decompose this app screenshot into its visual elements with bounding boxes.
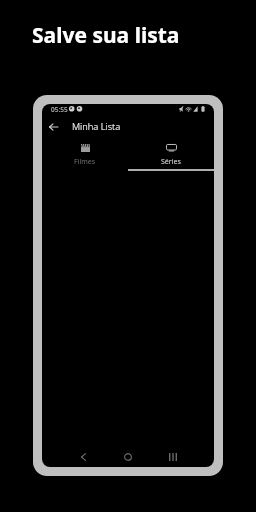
staticText: Salve sua lista xyxy=(32,21,180,50)
staticText: Minha Lista xyxy=(72,120,121,133)
button[interactable]: Séries xyxy=(128,138,214,170)
button[interactable]: Recentes xyxy=(150,445,195,467)
button[interactable]: Início xyxy=(105,445,150,467)
staticText: Filmes xyxy=(74,157,96,167)
button[interactable]: Voltar xyxy=(61,445,105,467)
button[interactable]: Voltar xyxy=(45,119,61,135)
button[interactable]: Filmes xyxy=(42,138,128,170)
staticText: 05:55 xyxy=(51,105,68,114)
staticText: Séries xyxy=(161,157,181,167)
